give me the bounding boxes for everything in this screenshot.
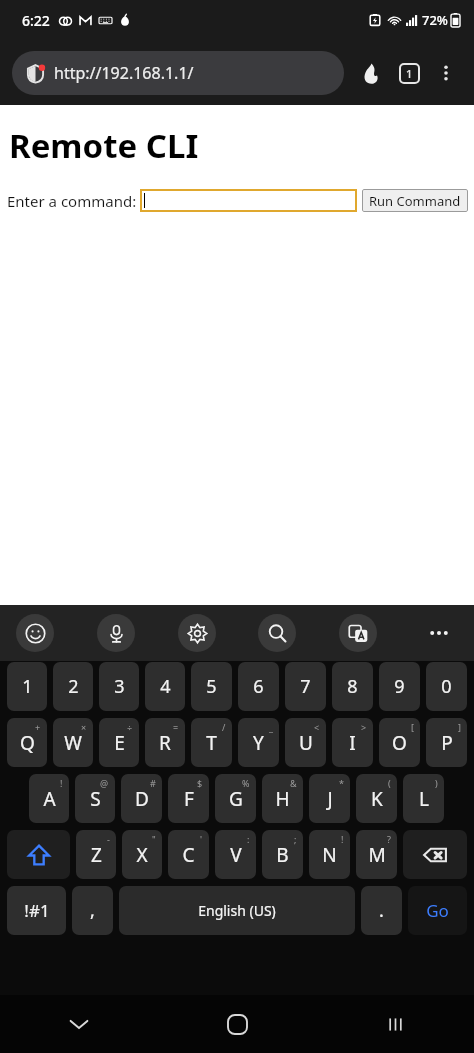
- staticText: G: [229, 786, 243, 812]
- staticText: V: [230, 842, 242, 868]
- button[interactable]: G: [215, 774, 256, 823]
- button[interactable]: Q: [7, 718, 47, 767]
- staticText: http://192.168.1.1/: [54, 62, 194, 84]
- button[interactable]: 6: [238, 662, 279, 711]
- button[interactable]: ,: [72, 886, 113, 935]
- button[interactable]: Brave Rewards: [352, 54, 390, 92]
- staticText: S: [90, 786, 101, 812]
- staticText: Q: [20, 730, 35, 756]
- staticText: 5: [206, 674, 217, 699]
- staticText: M: [368, 842, 386, 868]
- staticText: 9: [394, 674, 405, 699]
- staticText: ': [200, 833, 203, 845]
- button[interactable]: D: [121, 774, 162, 823]
- button[interactable]: 9: [379, 662, 420, 711]
- button[interactable]: V: [215, 830, 256, 879]
- button[interactable]: [140, 189, 357, 212]
- button[interactable]: N: [309, 830, 350, 879]
- staticText: 1: [22, 674, 33, 699]
- staticText: 7: [300, 674, 311, 699]
- staticText: $: [197, 777, 203, 789]
- button[interactable]: Tabs: [390, 54, 428, 92]
- button[interactable]: O: [379, 718, 420, 767]
- button[interactable]: 3: [99, 662, 139, 711]
- staticText: ]: [458, 721, 461, 733]
- button[interactable]: W: [53, 718, 93, 767]
- button[interactable]: Y: [238, 718, 279, 767]
- button[interactable]: More options: [428, 55, 464, 91]
- staticText: I: [349, 730, 356, 756]
- button[interactable]: J: [309, 774, 350, 823]
- button[interactable]: U: [285, 718, 326, 767]
- staticText: %: [242, 777, 250, 789]
- staticText: +: [35, 721, 41, 733]
- staticText: X: [136, 842, 148, 868]
- button[interactable]: Settings: [178, 614, 216, 652]
- staticText: T: [206, 730, 217, 756]
- button[interactable]: R: [145, 718, 185, 767]
- staticText: Run Command: [369, 192, 461, 210]
- staticText: /: [222, 721, 226, 733]
- staticText: J: [327, 786, 333, 812]
- button[interactable]: 0: [426, 662, 467, 711]
- button[interactable]: Run Command: [362, 189, 468, 212]
- button[interactable]: B: [262, 830, 303, 879]
- button[interactable]: 1: [7, 662, 47, 711]
- staticText: 6: [253, 674, 264, 699]
- staticText: Remote CLI: [9, 123, 199, 168]
- button[interactable]: Emoji: [16, 614, 54, 652]
- staticText: -: [107, 833, 110, 845]
- button[interactable]: K: [356, 774, 397, 823]
- staticText: ×: [81, 721, 87, 733]
- button[interactable]: .: [361, 886, 402, 935]
- button[interactable]: 2: [53, 662, 93, 711]
- staticText: B: [276, 842, 289, 868]
- staticText: F: [184, 786, 194, 812]
- staticText: _: [269, 721, 273, 733]
- button[interactable]: More: [420, 614, 458, 652]
- staticText: &: [290, 777, 297, 789]
- staticText: C: [182, 842, 195, 868]
- button[interactable]: Backspace: [403, 830, 467, 879]
- button[interactable]: 4: [145, 662, 185, 711]
- button[interactable]: Shift: [7, 830, 70, 879]
- staticText: English (US): [198, 901, 276, 920]
- button[interactable]: H: [262, 774, 303, 823]
- staticText: (: [388, 777, 391, 789]
- button[interactable]: Hide keyboard: [51, 996, 107, 1052]
- staticText: W: [64, 730, 82, 756]
- staticText: :: [247, 833, 250, 845]
- button[interactable]: A: [29, 774, 69, 823]
- staticText: 4: [160, 674, 171, 699]
- button[interactable]: L: [403, 774, 444, 823]
- button[interactable]: S: [75, 774, 115, 823]
- button[interactable]: M: [356, 830, 397, 879]
- staticText: >: [361, 721, 367, 733]
- button[interactable]: Z: [76, 830, 116, 879]
- button[interactable]: F: [168, 774, 209, 823]
- button[interactable]: I: [332, 718, 373, 767]
- button[interactable]: X: [122, 830, 162, 879]
- button[interactable]: http://192.168.1.1/: [12, 51, 344, 95]
- button[interactable]: E: [99, 718, 139, 767]
- staticText: 2: [68, 674, 79, 699]
- button[interactable]: 8: [332, 662, 373, 711]
- button[interactable]: Search: [258, 614, 296, 652]
- button[interactable]: Home: [209, 996, 265, 1052]
- button[interactable]: Go: [408, 886, 467, 935]
- staticText: Y: [253, 730, 264, 756]
- button[interactable]: 7: [285, 662, 326, 711]
- button[interactable]: T: [191, 718, 232, 767]
- button[interactable]: 5: [191, 662, 232, 711]
- staticText: *: [339, 777, 344, 789]
- button[interactable]: Translate: [339, 614, 377, 652]
- button[interactable]: P: [426, 718, 467, 767]
- button[interactable]: English (US): [119, 886, 355, 935]
- staticText: N: [322, 842, 337, 868]
- staticText: K: [371, 786, 383, 812]
- button[interactable]: C: [168, 830, 209, 879]
- staticText: <: [314, 721, 320, 733]
- button[interactable]: Recent apps: [367, 996, 423, 1052]
- button[interactable]: !#1: [7, 886, 66, 935]
- button[interactable]: Voice input: [97, 614, 135, 652]
